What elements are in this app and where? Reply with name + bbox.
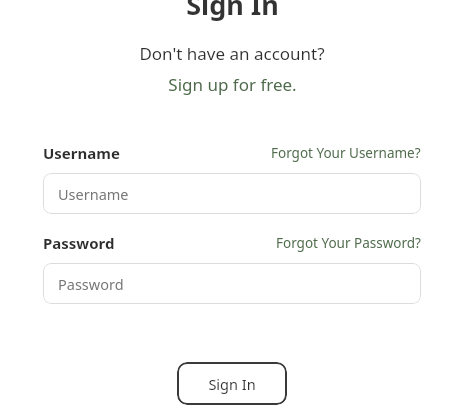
button[interactable]: Forgot Your Password?: [276, 234, 421, 252]
staticText: Forgot Your Password?: [276, 234, 421, 252]
button[interactable]: Sign up for free.: [168, 73, 297, 96]
button[interactable]: Password: [43, 263, 421, 304]
button[interactable]: Sign In: [177, 362, 287, 405]
staticText: Username: [43, 143, 120, 163]
staticText: Sign In: [208, 374, 256, 394]
staticText: Password: [43, 233, 115, 253]
button[interactable]: Username: [43, 173, 421, 214]
staticText: Sign up for free.: [168, 73, 297, 96]
staticText: Don't have an account?: [139, 42, 325, 65]
staticText: Password: [58, 274, 124, 294]
staticText: Username: [58, 184, 129, 204]
staticText: Forgot Your Username?: [271, 144, 421, 162]
button[interactable]: Forgot Your Username?: [271, 144, 421, 162]
staticText: Sign In: [186, 0, 279, 23]
